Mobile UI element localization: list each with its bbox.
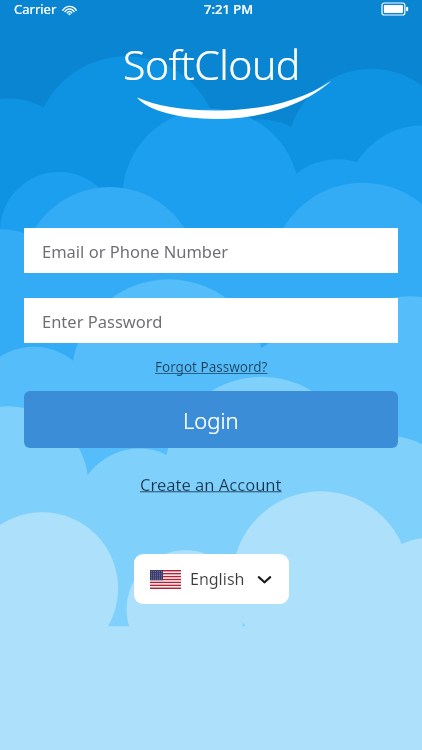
- staticText: SoftCloud: [123, 36, 300, 92]
- staticText: Create an Account: [140, 473, 282, 495]
- staticText: Forgot Password?: [155, 358, 268, 376]
- staticText: Email or Phone Number: [42, 240, 229, 262]
- button[interactable]: Login: [24, 391, 398, 448]
- other: Change language: [257, 572, 272, 587]
- button[interactable]: Forgot Password?: [149, 355, 274, 379]
- staticText: Login: [183, 405, 239, 435]
- button[interactable]: Email or Phone Number: [24, 228, 398, 273]
- staticText: Enter Password: [42, 310, 163, 332]
- button[interactable]: Enter Password: [24, 298, 398, 343]
- staticText: Carrier: [14, 0, 57, 18]
- staticText: 7:21 PM: [204, 0, 254, 18]
- staticText: English: [190, 568, 245, 590]
- button[interactable]: Create an Account: [134, 470, 288, 498]
- button[interactable]: English: [134, 554, 289, 604]
